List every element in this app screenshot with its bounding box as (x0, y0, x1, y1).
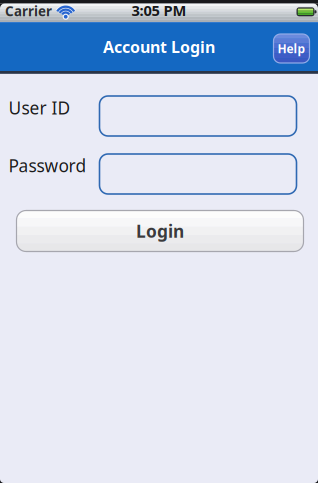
staticText: Login (136, 219, 184, 242)
staticText: Account Login (103, 36, 215, 57)
button[interactable] (99, 96, 296, 136)
staticText: User ID (8, 96, 70, 119)
button[interactable] (99, 154, 296, 194)
button[interactable]: Help (273, 34, 309, 63)
staticText: Help (277, 40, 305, 56)
staticText: Carrier (5, 2, 52, 20)
staticText: Password (8, 154, 86, 177)
button[interactable]: Login (16, 210, 303, 251)
staticText: 3:05 PM (131, 0, 186, 20)
